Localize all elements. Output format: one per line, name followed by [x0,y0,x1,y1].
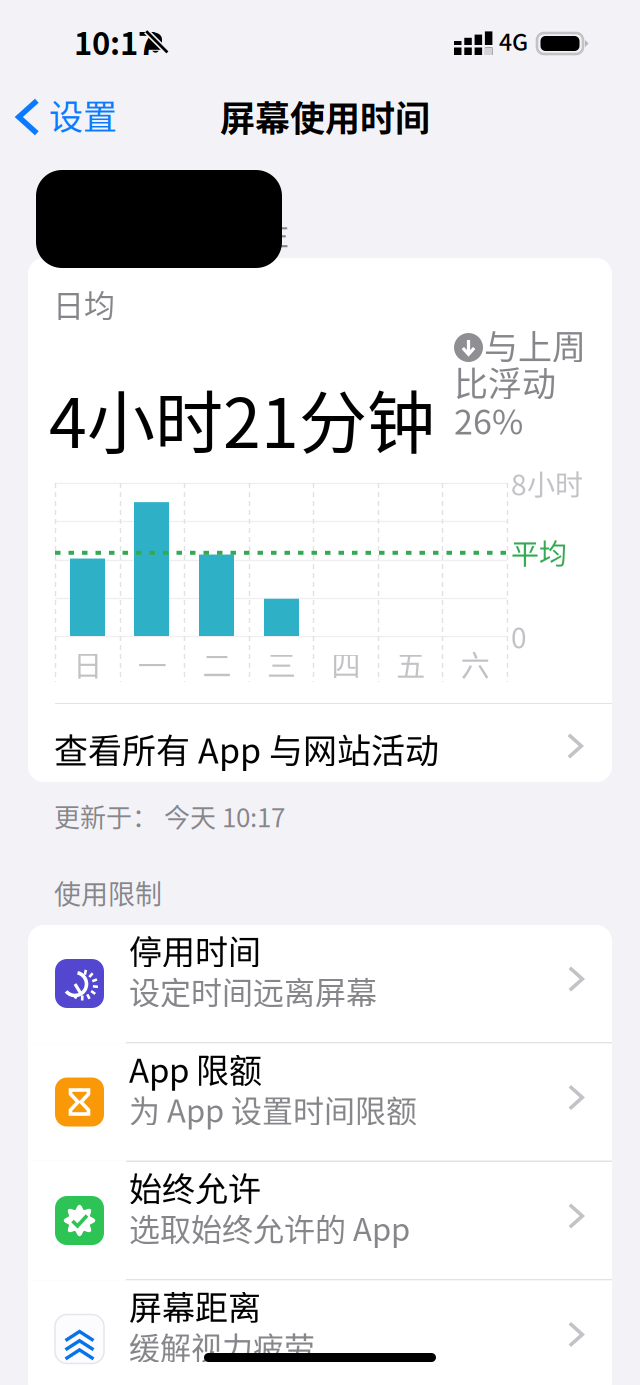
button[interactable]: 设置 [8,92,148,156]
staticText: 停用时间 [129,926,261,974]
staticText: 0 [511,616,527,656]
staticText: 平均 [511,532,567,572]
staticText: 二 [202,643,231,685]
staticText: 日均 [53,281,115,326]
staticText: 四 [332,643,361,685]
staticText: ONE [233,216,289,255]
staticText: 五 [396,643,425,685]
staticText: 10:17 [74,19,156,64]
button[interactable]: 屏幕距离 [28,1280,612,1385]
staticText: 设定时间远离屏幕 [129,968,377,1013]
staticText: 4小时21分钟 [49,369,435,467]
staticText: 与上周 [484,320,586,369]
staticText: 缓解视力疲劳 [129,1323,315,1368]
staticText: 六 [461,643,490,685]
staticText: 更新于： 今天 10:17 [54,797,285,835]
button[interactable]: 查看所有 App 与网站活动 [28,704,612,782]
button[interactable]: App 限额 [28,1043,612,1160]
staticText: 查看所有 App 与网站活动 [54,724,439,773]
staticText: 日 [73,643,102,685]
staticText: 始终允许 [129,1163,261,1211]
button[interactable]: 始终允许 [28,1162,612,1279]
staticText: 一 [138,643,167,685]
staticText: 屏幕距离 [129,1281,261,1329]
staticText: 设置 [49,90,117,139]
staticText: 8小时 [511,463,583,503]
staticText: App 限额 [129,1044,262,1092]
staticText: 为 App 设置时间限额 [129,1086,417,1131]
staticText: 4G [499,24,528,57]
staticText: 三 [267,643,296,685]
button[interactable]: 停用时间 [28,925,612,1042]
staticText: 比浮动 [454,357,556,406]
staticText: 使用限制 [54,873,162,912]
staticText: 选取始终允许的 App [129,1205,410,1250]
staticText: 26% [454,395,523,444]
staticText: 屏幕使用时间 [220,91,430,142]
